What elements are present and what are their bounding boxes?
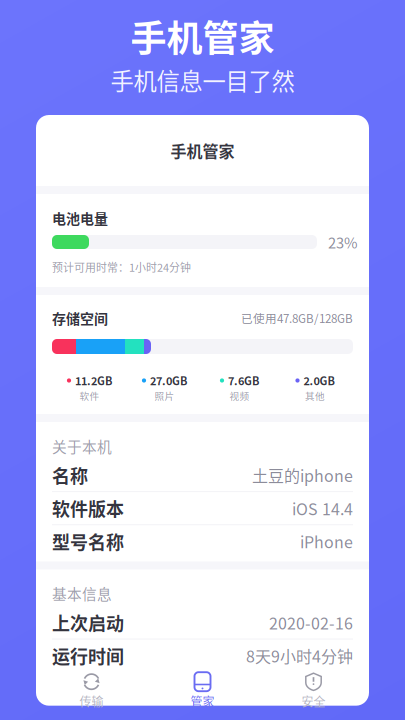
staticText: 运行时间 xyxy=(52,643,124,669)
staticText: 2.0GB xyxy=(304,373,335,388)
button[interactable]: 传输 xyxy=(36,672,147,706)
staticText: 手机管家 xyxy=(130,10,274,62)
staticText: 型号名称 xyxy=(52,528,124,554)
staticText: 8天9小时4分钟 xyxy=(246,644,353,667)
staticText: 手机管家 xyxy=(170,139,234,162)
staticText: 传输 xyxy=(79,692,103,710)
button[interactable]: 安全 xyxy=(258,672,369,706)
staticText: iOS 14.4 xyxy=(292,497,353,520)
staticText: 软件版本 xyxy=(52,495,124,521)
button[interactable]: 管家 xyxy=(147,672,258,706)
staticText: 11.2GB xyxy=(75,373,112,388)
staticText: 名称 xyxy=(52,462,88,488)
button[interactable]: 上次启动 xyxy=(36,606,369,639)
button[interactable]: 运行时间 xyxy=(36,639,369,672)
staticText: 存储空间 xyxy=(52,308,108,328)
staticText: 7.6GB xyxy=(228,373,259,388)
staticText: 关于本机 xyxy=(52,435,112,457)
staticText: 预计可用时常：1小时24分钟 xyxy=(52,259,191,275)
staticText: 电池电量 xyxy=(52,208,108,228)
button[interactable]: 型号名称 xyxy=(36,525,369,557)
staticText: 其他 xyxy=(305,388,325,402)
staticText: 管家 xyxy=(190,692,214,710)
staticText: 基本信息 xyxy=(52,583,112,604)
staticText: 2020-02-16 xyxy=(269,611,353,634)
staticText: 27.0GB xyxy=(150,373,187,388)
button[interactable]: 名称 xyxy=(36,459,369,491)
staticText: iPhone xyxy=(300,530,353,553)
staticText: 视频 xyxy=(229,388,249,402)
staticText: 23% xyxy=(328,231,358,253)
staticText: 上次启动 xyxy=(52,609,124,636)
button[interactable]: 软件版本 xyxy=(36,492,369,524)
staticText: 已使用47.8GB/128GB xyxy=(241,310,353,326)
staticText: 软件 xyxy=(79,388,99,402)
staticText: 照片 xyxy=(154,388,174,402)
staticText: 手机信息一目了然 xyxy=(110,63,294,97)
staticText: 安全 xyxy=(301,692,325,710)
staticText: 土豆的iphone xyxy=(252,463,353,487)
